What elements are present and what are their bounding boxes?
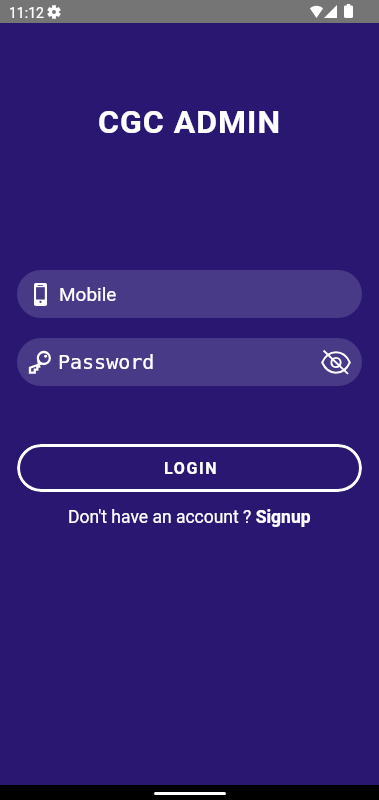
button[interactable]: Password — [17, 338, 362, 386]
staticText: Mobile — [59, 283, 117, 305]
button[interactable]: Show password — [319, 345, 353, 379]
staticText: 11:12 — [9, 5, 44, 21]
button[interactable]: Don't have an account ? Signup — [68, 507, 311, 528]
staticText: Password — [58, 350, 155, 373]
staticText: LOGIN — [164, 459, 219, 478]
button[interactable]: Mobile — [17, 270, 362, 318]
button[interactable]: LOGIN — [17, 444, 362, 492]
staticText: CGC ADMIN — [0, 103, 379, 141]
